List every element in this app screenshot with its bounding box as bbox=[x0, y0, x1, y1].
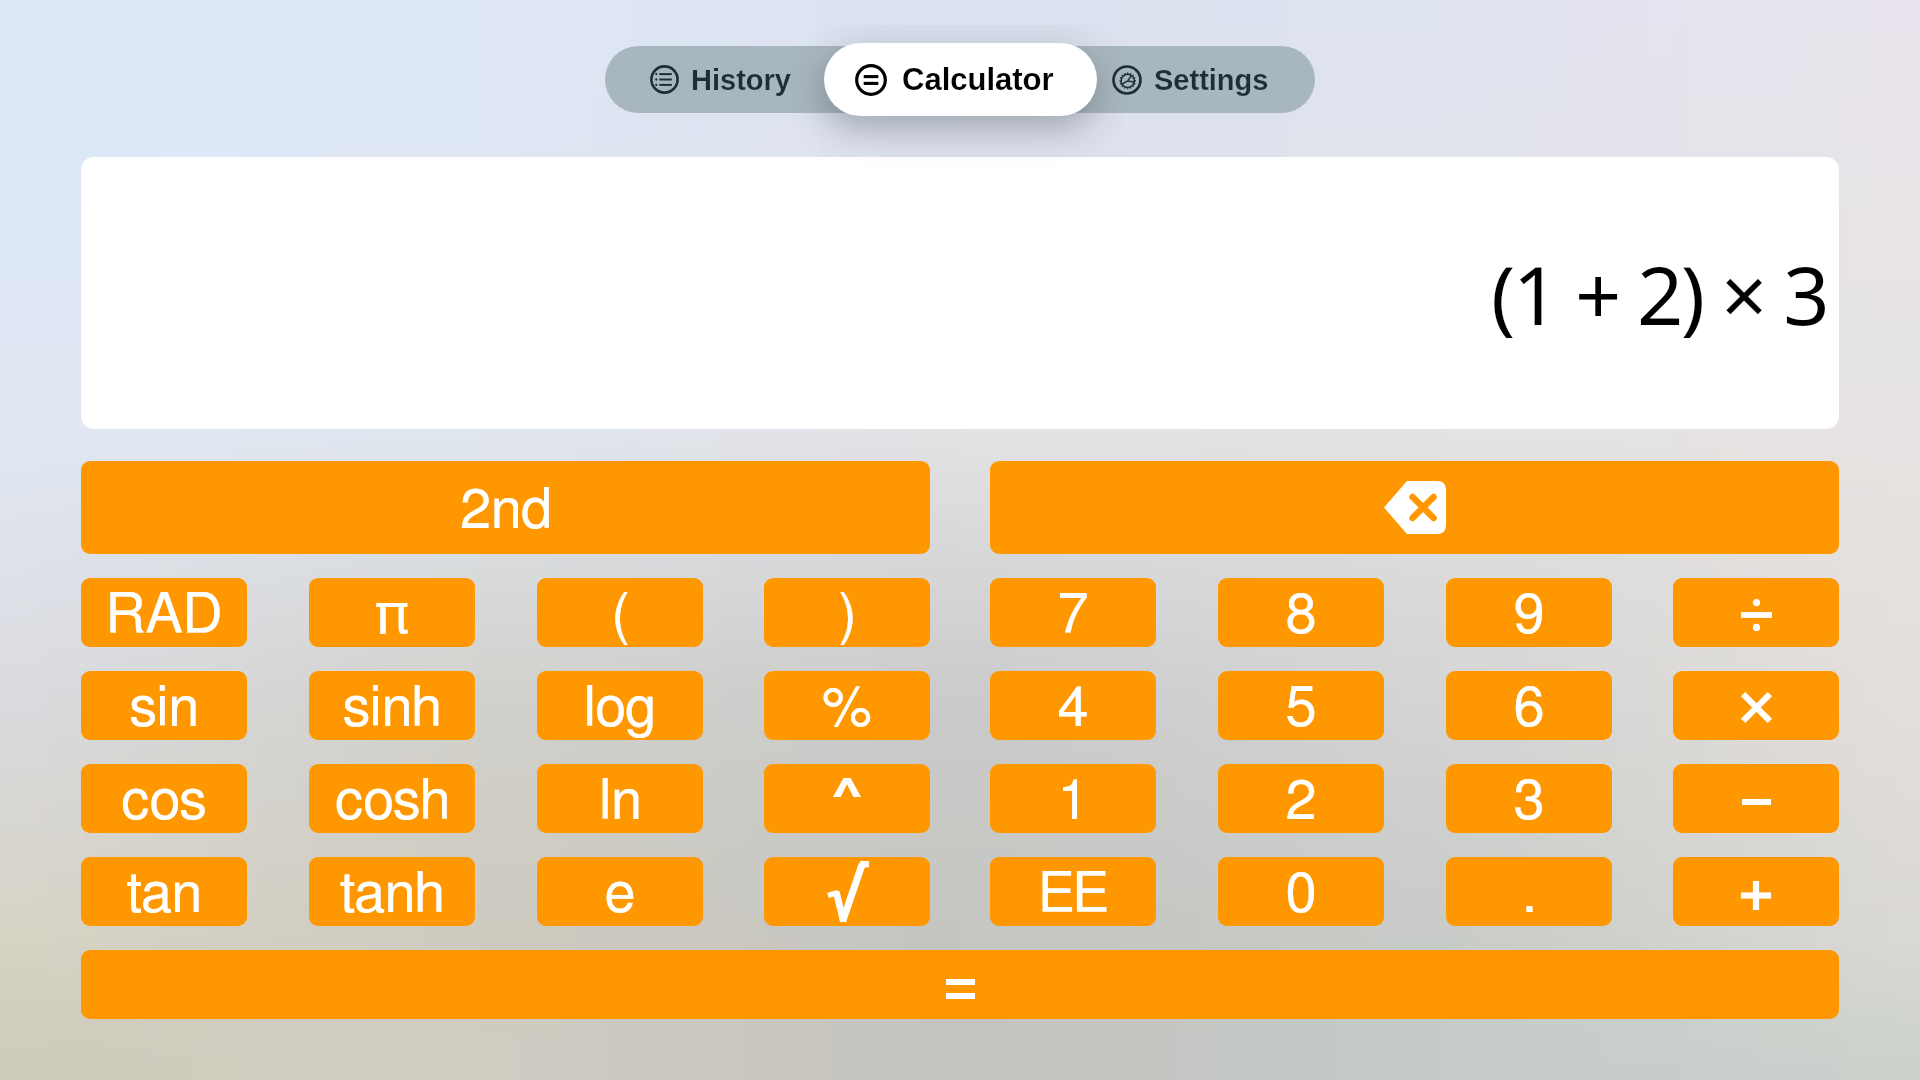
button[interactable]: 0 bbox=[1218, 857, 1384, 926]
staticText: 2 bbox=[1285, 774, 1317, 830]
button[interactable]: 8 bbox=[1218, 578, 1384, 647]
button[interactable]: 9 bbox=[1446, 578, 1612, 647]
staticText: 8 bbox=[1285, 588, 1317, 644]
staticText: cosh bbox=[335, 774, 450, 830]
staticText: ) bbox=[838, 588, 857, 644]
button[interactable]: (1 + 2) × 3 bbox=[81, 157, 1839, 429]
staticText: (1 + 2) × 3 bbox=[1491, 238, 1827, 348]
staticText: cos bbox=[121, 774, 207, 830]
staticText: 4 bbox=[1057, 681, 1089, 737]
button[interactable]: ( bbox=[537, 578, 703, 647]
button[interactable]: History bbox=[650, 46, 791, 113]
staticText: π bbox=[375, 588, 409, 644]
button[interactable]: 5 bbox=[1218, 671, 1384, 740]
button[interactable]: 2nd bbox=[81, 461, 930, 554]
staticText: e bbox=[605, 867, 635, 923]
button[interactable]: sin bbox=[81, 671, 247, 740]
staticText: Settings bbox=[1154, 64, 1269, 96]
staticText: tanh bbox=[339, 867, 445, 923]
button[interactable]: . bbox=[1446, 857, 1612, 926]
staticText: 6 bbox=[1513, 681, 1545, 737]
button[interactable]: ln bbox=[537, 764, 703, 833]
staticText: 3 bbox=[1513, 774, 1545, 830]
button[interactable]: e bbox=[537, 857, 703, 926]
button[interactable]: 3 bbox=[1446, 764, 1612, 833]
button[interactable]: RAD bbox=[81, 578, 247, 647]
button[interactable]: tan bbox=[81, 857, 247, 926]
button[interactable]: sinh bbox=[309, 671, 475, 740]
button[interactable]: EE bbox=[990, 857, 1156, 926]
staticText: Calculator bbox=[902, 62, 1054, 97]
staticText: 9 bbox=[1513, 588, 1545, 644]
staticText: . bbox=[1522, 867, 1536, 923]
button[interactable]: cosh bbox=[309, 764, 475, 833]
button[interactable]: 2 bbox=[1218, 764, 1384, 833]
button[interactable]: 6 bbox=[1446, 671, 1612, 740]
button[interactable] bbox=[1673, 764, 1839, 833]
button[interactable]: π bbox=[309, 578, 475, 647]
button[interactable]: tanh bbox=[309, 857, 475, 926]
button[interactable]: 4 bbox=[990, 671, 1156, 740]
button[interactable] bbox=[1673, 671, 1839, 740]
button[interactable]: 7 bbox=[990, 578, 1156, 647]
button[interactable]: cos bbox=[81, 764, 247, 833]
staticText: ln bbox=[599, 774, 642, 830]
button[interactable] bbox=[1673, 578, 1839, 647]
staticText: 2nd bbox=[460, 483, 552, 539]
button[interactable] bbox=[764, 857, 930, 926]
staticText: 0 bbox=[1285, 867, 1317, 923]
button[interactable] bbox=[1673, 857, 1839, 926]
button[interactable]: % bbox=[764, 671, 930, 740]
staticText: History bbox=[691, 64, 791, 96]
staticText: 5 bbox=[1285, 681, 1317, 737]
button[interactable]: 1 bbox=[990, 764, 1156, 833]
button[interactable]: Calculator bbox=[824, 43, 1097, 116]
staticText: RAD bbox=[106, 588, 222, 644]
button[interactable]: ) bbox=[764, 578, 930, 647]
button[interactable]: Backspace bbox=[990, 461, 1839, 554]
staticText: % bbox=[822, 681, 872, 737]
staticText: sin bbox=[129, 681, 199, 737]
button[interactable] bbox=[81, 950, 1839, 1019]
button[interactable]: log bbox=[537, 671, 703, 740]
staticText: log bbox=[584, 681, 656, 737]
staticText: sinh bbox=[342, 681, 442, 737]
staticText: EE bbox=[1038, 867, 1108, 923]
staticText: 1 bbox=[1057, 774, 1089, 830]
staticText: ( bbox=[611, 588, 630, 644]
button[interactable] bbox=[764, 764, 930, 833]
staticText: tan bbox=[126, 867, 202, 923]
button[interactable]: Settings bbox=[1112, 46, 1269, 113]
staticText: 7 bbox=[1057, 588, 1089, 644]
